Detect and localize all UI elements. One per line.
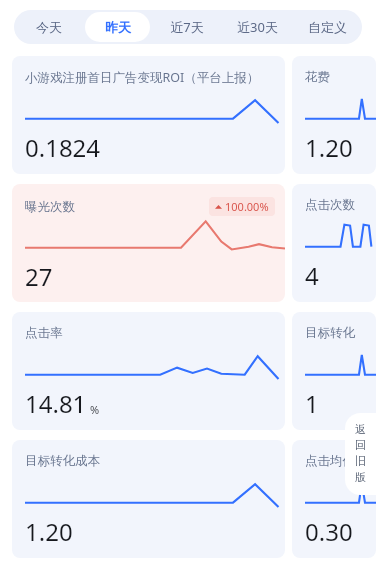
button[interactable]: 目标转化成本 [12, 440, 285, 558]
button[interactable]: 花费 [292, 56, 376, 174]
staticText: % [90, 402, 100, 417]
button[interactable]: 曝光次数 [12, 184, 285, 302]
button[interactable]: 点击率 [12, 312, 285, 430]
button[interactable]: 近7天 [154, 12, 220, 42]
staticText: 0.1824 [25, 131, 101, 164]
staticText: 昨天 [105, 19, 131, 35]
staticText: 27 [25, 260, 53, 292]
staticText: 点击率 [25, 325, 63, 341]
staticText: 1 [305, 387, 319, 420]
staticText: 小游戏注册首日广告变现ROI（平台上报） [25, 69, 260, 86]
staticText: 100.00% [225, 199, 269, 214]
staticText: 1.20 [305, 131, 353, 164]
staticText: 点击次数 [305, 197, 355, 213]
staticText: 目标转化成本 [25, 453, 100, 469]
staticText: 版 [355, 470, 366, 484]
button[interactable]: 近30天 [224, 12, 290, 42]
button[interactable]: 点击均价 [292, 440, 376, 558]
button[interactable]: 点击次数 [292, 184, 376, 302]
staticText: 旧 [355, 454, 366, 468]
staticText: 近30天 [237, 18, 278, 36]
button[interactable]: 目标转化量 [292, 312, 376, 430]
staticText: 1.20 [25, 515, 73, 548]
staticText: 今天 [36, 19, 62, 35]
staticText: 回 [355, 438, 366, 452]
staticText: 0.30 [305, 515, 353, 548]
button[interactable]: 昨天 [85, 12, 150, 42]
staticText: 4 [305, 259, 319, 292]
button[interactable]: 返回旧版 [345, 413, 376, 495]
staticText: 14.81 [25, 387, 87, 420]
staticText: 近7天 [170, 18, 204, 36]
staticText: 目标转化量 [305, 325, 366, 341]
staticText: 曝光次数 [25, 199, 75, 215]
button[interactable]: 自定义 [294, 12, 360, 42]
staticText: 点击均价 [305, 453, 355, 469]
button[interactable]: 小游戏注册首日广告变现ROI（平台上报） [12, 56, 285, 174]
staticText: 花费 [305, 69, 330, 85]
staticText: 返 [355, 422, 366, 436]
button[interactable]: 今天 [16, 12, 81, 42]
staticText: 自定义 [308, 19, 347, 35]
